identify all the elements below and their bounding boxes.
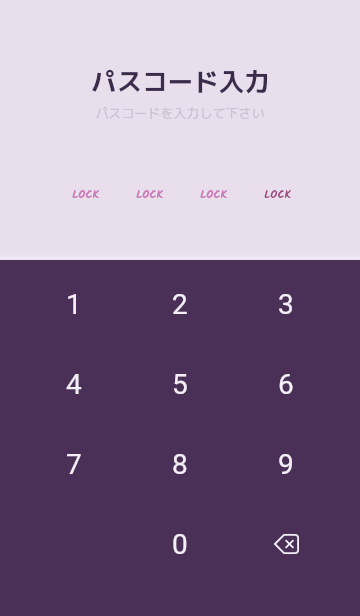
staticText: 7 bbox=[66, 448, 82, 481]
staticText: 8 bbox=[172, 448, 188, 481]
button[interactable]: 1 bbox=[21, 264, 127, 344]
staticText: パスコードを入力して下さい bbox=[95, 104, 265, 122]
staticText: パスコード入力 bbox=[91, 64, 270, 100]
button[interactable]: 0 bbox=[127, 504, 233, 584]
button[interactable]: 9 bbox=[233, 424, 339, 504]
staticText: 3 bbox=[278, 288, 294, 321]
staticText: LOCK bbox=[136, 186, 164, 204]
button[interactable]: 4 bbox=[21, 344, 127, 424]
staticText: LOCK bbox=[200, 186, 228, 204]
staticText: LOCK bbox=[264, 186, 292, 204]
staticText: 1 bbox=[66, 288, 82, 321]
button[interactable]: 3 bbox=[233, 264, 339, 344]
button[interactable]: 2 bbox=[127, 264, 233, 344]
staticText: 2 bbox=[172, 288, 188, 321]
button[interactable]: 7 bbox=[21, 424, 127, 504]
button[interactable]: 8 bbox=[127, 424, 233, 504]
staticText: LOCK bbox=[72, 186, 100, 204]
staticText: 4 bbox=[66, 368, 82, 401]
staticText: 6 bbox=[278, 368, 294, 401]
staticText: 5 bbox=[172, 368, 188, 401]
staticText: 0 bbox=[172, 528, 188, 561]
button[interactable]: Backspace bbox=[233, 504, 339, 584]
button[interactable]: 5 bbox=[127, 344, 233, 424]
staticText: 9 bbox=[278, 448, 294, 481]
button[interactable]: 6 bbox=[233, 344, 339, 424]
